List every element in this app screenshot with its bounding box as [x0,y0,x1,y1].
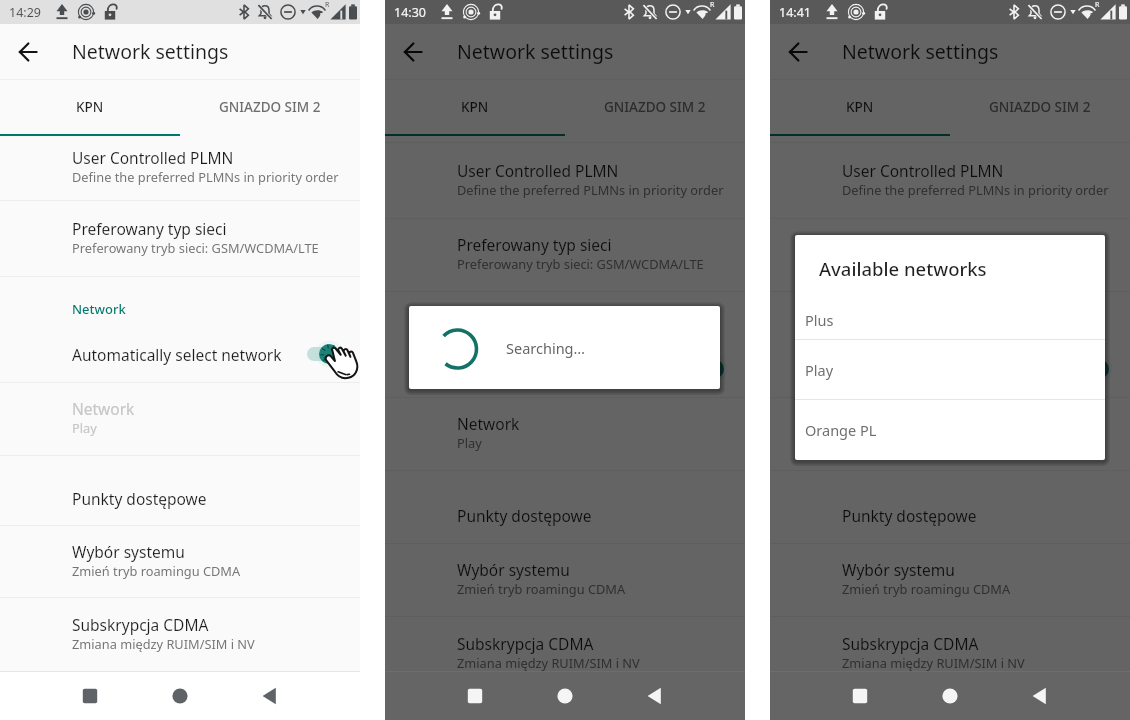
staticText: Preferowany typ sieci [842,234,997,255]
staticText: Define the preferred PLMNs in priority o… [457,181,724,198]
button[interactable]: Punkty dostępowe [0,456,360,525]
button[interactable]: Network [770,398,1130,470]
staticText: GNIAZDO SIM 2 [604,98,706,116]
button[interactable]: KPN [770,80,950,134]
staticText: Play [457,434,482,451]
button[interactable]: User Controlled PLMN [0,136,360,200]
staticText: Zmień tryb roamingu CDMA [457,580,626,597]
staticText: Searching… [506,338,585,358]
staticText: 5 [705,11,709,20]
button[interactable]: User Controlled PLMN [770,143,1130,218]
button[interactable]: Wybór systemu [0,526,360,597]
button[interactable]: GNIAZDO SIM 2 [180,80,360,134]
staticText: KPN [846,98,874,116]
staticText: Network settings [72,38,229,65]
staticText: Network [72,398,135,419]
button[interactable]: Back [778,32,818,72]
button[interactable]: Preferowany typ sieci [385,219,745,291]
staticText: 5 [320,11,324,20]
staticText: 14:41 [779,4,811,21]
staticText: Zmiana między RUIM/SIM i NV [72,635,255,652]
staticText: Punkty dostępowe [842,505,977,526]
staticText: Wybór systemu [842,559,955,580]
button[interactable]: Back [393,32,433,72]
staticText: Network settings [457,38,614,65]
button[interactable]: Back [8,32,48,72]
staticText: Plus [805,310,834,330]
staticText: User Controlled PLMN [842,160,1004,181]
button[interactable]: User Controlled PLMN [385,143,745,218]
button[interactable]: Preferowany typ sieci [0,201,360,276]
button[interactable]: Play [795,340,1105,399]
staticText: Network [842,413,905,434]
staticText: User Controlled PLMN [72,147,234,168]
button[interactable]: Wybór systemu [385,544,745,616]
staticText: Punkty dostępowe [457,505,592,526]
staticText: Define the preferred PLMNs in priority o… [842,181,1109,198]
staticText: Network settings [842,38,999,65]
staticText: GNIAZDO SIM 2 [989,98,1091,116]
button[interactable]: Orange PL [795,400,1105,460]
staticText: Network [457,315,511,333]
staticText: Network [72,300,126,318]
staticText: Subskrypcja CDMA [842,633,979,654]
staticText: User Controlled PLMN [457,160,619,181]
staticText: Subskrypcja CDMA [72,614,209,635]
button[interactable]: Automatically select network [385,341,745,397]
staticText: Available networks [819,256,987,281]
button[interactable]: Preferowany typ sieci [770,219,1130,291]
staticText: Punkty dostępowe [72,488,207,509]
staticText: Preferowany tryb sieci: GSM/WCDMA/LTE [72,239,319,256]
staticText: Automatically select network [457,359,667,380]
staticText: Play [842,434,867,451]
staticText: Zmiana między RUIM/SIM i NV [842,654,1025,671]
button[interactable]: KPN [385,80,565,134]
staticText: Orange PL [805,420,877,440]
staticText: Play [805,360,834,380]
staticText: 5 [1090,11,1094,20]
button[interactable]: Subskrypcja CDMA [770,617,1130,690]
staticText: Zmień tryb roamingu CDMA [72,562,241,579]
button[interactable]: Plus [795,301,1105,339]
button[interactable]: Network [0,383,360,455]
staticText: Zmiana między RUIM/SIM i NV [457,654,640,671]
staticText: Preferowany typ sieci [457,234,612,255]
staticText: Zmień tryb roamingu CDMA [842,580,1011,597]
staticText: R [710,0,715,10]
button[interactable]: Network [385,398,745,470]
staticText: 14:29 [9,4,41,21]
button[interactable]: Automatically select network [770,341,1130,397]
staticText: Preferowany tryb sieci: GSM/WCDMA/LTE [457,255,704,272]
staticText: GNIAZDO SIM 2 [219,98,321,116]
button[interactable]: KPN [0,80,180,134]
staticText: Preferowany tryb sieci: GSM/WCDMA/LTE [842,255,1089,272]
staticText: Subskrypcja CDMA [457,633,594,654]
staticText: R [1095,0,1100,10]
staticText: Play [72,419,97,436]
button[interactable]: Wybór systemu [770,544,1130,616]
button[interactable]: Automatically select network [0,326,360,382]
button[interactable]: GNIAZDO SIM 2 [950,80,1130,134]
staticText: Wybór systemu [457,559,570,580]
staticText: 14:30 [394,4,426,21]
staticText: R [325,0,330,10]
staticText: Preferowany typ sieci [72,218,227,239]
staticText: KPN [76,98,104,116]
staticText: Automatically select network [72,344,282,365]
button[interactable]: Subskrypcja CDMA [0,598,360,671]
button[interactable]: Punkty dostępowe [770,471,1130,543]
staticText: KPN [461,98,489,116]
staticText: Define the preferred PLMNs in priority o… [72,168,339,185]
button[interactable]: GNIAZDO SIM 2 [565,80,745,134]
button[interactable]: Subskrypcja CDMA [385,617,745,690]
staticText: Network [457,413,520,434]
button[interactable]: Punkty dostępowe [385,471,745,543]
staticText: Wybór systemu [72,541,185,562]
